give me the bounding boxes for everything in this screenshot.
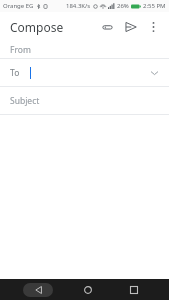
staticText: 26% [117, 2, 129, 10]
button[interactable]: To [0, 59, 169, 86]
staticText: 184.3K/s [66, 2, 91, 10]
staticText: Compose [10, 19, 64, 35]
button[interactable]: From [0, 42, 169, 58]
button[interactable]: More options [143, 17, 163, 37]
button[interactable]: Expand recipients [147, 66, 161, 80]
button[interactable]: Send [121, 17, 141, 37]
button[interactable]: Attach file [97, 17, 117, 37]
staticText: 2:55 PM [143, 2, 166, 10]
staticText: From [10, 44, 31, 56]
staticText: Orange EG [3, 2, 34, 10]
button[interactable]: Subject [0, 87, 169, 114]
button[interactable]: Back [23, 283, 53, 297]
staticText: To [10, 67, 20, 79]
staticText: Subject [10, 95, 40, 107]
button[interactable]: Home [76, 282, 100, 298]
button[interactable]: Recent apps [122, 282, 146, 298]
